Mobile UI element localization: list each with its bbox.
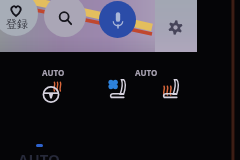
button[interactable]: Voice search [99,1,136,38]
button[interactable]: 登録 [0,0,38,36]
button[interactable]: Ventilated seat [108,79,127,99]
button[interactable]: Heated seat [161,79,180,99]
staticText: AUTO [135,67,158,78]
staticText: AUTO [42,67,65,78]
staticText: 登録 [6,17,28,31]
staticText: AUTO [18,149,60,160]
button[interactable]: Heated steering wheel [42,80,62,102]
button[interactable]: Settings [155,0,197,52]
button[interactable]: Search [44,0,86,37]
